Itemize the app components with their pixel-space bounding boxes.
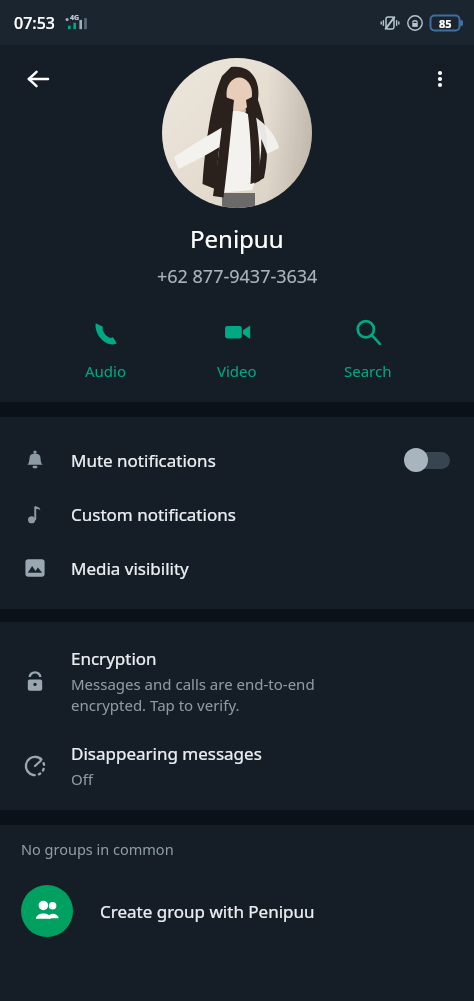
staticText: Messages and calls are end-to-end encryp… (71, 674, 315, 716)
button[interactable]: Media visibility (0, 541, 474, 595)
button[interactable]: Mute notifications (0, 433, 474, 487)
staticText: Media visibility (71, 557, 189, 580)
staticText: Mute notifications (71, 449, 216, 472)
staticText: Search (344, 361, 392, 381)
button[interactable]: Search (336, 315, 400, 383)
staticText: +62 877-9437-3634 (157, 264, 318, 289)
staticText: Penipuu (190, 222, 284, 255)
button[interactable]: Back (14, 55, 62, 103)
staticText: 85 (439, 16, 452, 31)
staticText: Disappearing messages (71, 742, 262, 765)
staticText: Custom notifications (71, 503, 236, 526)
staticText: 4G (70, 13, 80, 23)
button[interactable]: Audio (74, 315, 138, 383)
staticText: Audio (85, 361, 127, 381)
button[interactable]: Mute notifications toggle (404, 447, 456, 473)
staticText: 07:53 (14, 12, 55, 34)
staticText: Off (71, 769, 94, 789)
button[interactable]: Encryption (0, 634, 474, 729)
button[interactable]: Disappearing messages (0, 729, 474, 802)
button[interactable] (162, 58, 312, 208)
staticText: Create group with Penipuu (100, 900, 315, 923)
button[interactable]: Create group with Penipuu (0, 879, 474, 943)
button[interactable]: Video (205, 315, 269, 383)
staticText: Video (217, 361, 257, 381)
button[interactable]: More options (416, 55, 464, 103)
button[interactable]: Custom notifications (0, 487, 474, 541)
staticText: No groups in common (21, 839, 174, 859)
staticText: Encryption (71, 647, 157, 670)
